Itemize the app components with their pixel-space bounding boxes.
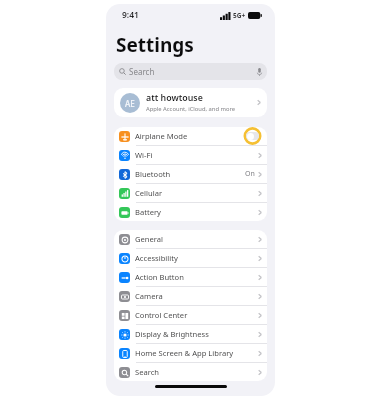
staticText: 5G+ <box>233 11 246 20</box>
staticText: Bluetooth <box>135 169 171 179</box>
button[interactable]: General <box>114 230 267 248</box>
button[interactable]: Home Screen & App Library <box>114 344 267 362</box>
staticText: Display & Brightness <box>135 329 209 339</box>
staticText: Battery <box>135 207 161 217</box>
button[interactable]: Wi-Fi <box>114 146 267 164</box>
button[interactable]: Battery <box>114 203 267 221</box>
staticText: Action Button <box>135 272 184 282</box>
staticText: On <box>245 169 255 179</box>
staticText: Accessibility <box>135 253 178 263</box>
staticText: Settings <box>116 32 194 58</box>
staticText: Control Center <box>135 310 188 320</box>
staticText: General <box>135 234 163 244</box>
button[interactable]: Airplane Mode toggle <box>242 127 263 145</box>
staticText: Wi-Fi <box>135 150 153 160</box>
staticText: Search <box>129 66 155 77</box>
button[interactable]: Accessibility <box>114 249 267 267</box>
button[interactable]: Display & Brightness <box>114 325 267 343</box>
staticText: Apple Account, iCloud, and more <box>146 105 235 113</box>
staticText: Cellular <box>135 188 163 198</box>
staticText: Home Screen & App Library <box>135 348 234 358</box>
button[interactable]: Search <box>114 363 267 381</box>
button[interactable]: Control Center <box>114 306 267 324</box>
button[interactable]: Search <box>114 63 267 80</box>
button[interactable]: Action Button <box>114 268 267 286</box>
staticText: Camera <box>135 291 163 301</box>
staticText: AE <box>125 98 135 109</box>
staticText: 9:41 <box>122 9 139 21</box>
button[interactable]: Airplane Mode <box>114 127 267 145</box>
button[interactable]: Cellular <box>114 184 267 202</box>
button[interactable]: Bluetooth <box>114 165 267 183</box>
staticText: Airplane Mode <box>135 131 188 141</box>
button[interactable]: Camera <box>114 287 267 305</box>
staticText: att howtouse <box>146 92 203 104</box>
button[interactable]: AE <box>114 88 267 117</box>
staticText: Search <box>135 367 160 377</box>
